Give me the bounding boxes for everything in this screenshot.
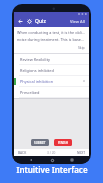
staticText: SUBMIT — [34, 141, 46, 145]
button[interactable]: FINISH — [54, 139, 72, 146]
staticText: Intuitive Interface — [16, 164, 88, 175]
button[interactable]: View All — [69, 18, 86, 25]
button[interactable]: Prescribed — [14, 87, 89, 97]
staticText: Skip — [78, 45, 85, 50]
staticText: 3 / 20 — [47, 151, 56, 155]
staticText: Physical inhibition — [20, 79, 82, 84]
staticText: Review flexibility — [20, 57, 86, 62]
button[interactable]: Home — [48, 156, 56, 164]
staticText: View All — [70, 19, 85, 24]
staticText: BACK — [18, 151, 27, 155]
staticText: Prescribed — [20, 90, 86, 95]
button[interactable]: Review flexibility — [14, 54, 89, 64]
button[interactable]: Religions inhibited — [14, 65, 89, 75]
staticText: FINISH — [58, 141, 68, 145]
button[interactable]: BACK — [17, 151, 28, 155]
staticText: noise during treatment. This is based on… — [17, 37, 86, 42]
button[interactable]: Back — [27, 156, 35, 164]
button[interactable]: Back — [17, 18, 24, 25]
staticText: Quiz — [35, 18, 46, 25]
staticText: When conducting a test, it is the obliga… — [17, 30, 86, 35]
staticText: NEXT — [77, 151, 85, 155]
button[interactable]: NEXT — [76, 151, 86, 155]
button[interactable]: Recents — [68, 156, 76, 164]
button[interactable]: Skip — [77, 45, 86, 50]
button[interactable]: SUBMIT — [31, 139, 49, 146]
button[interactable]: Physical inhibition — [14, 76, 89, 86]
staticText: Religions inhibited — [20, 68, 86, 73]
